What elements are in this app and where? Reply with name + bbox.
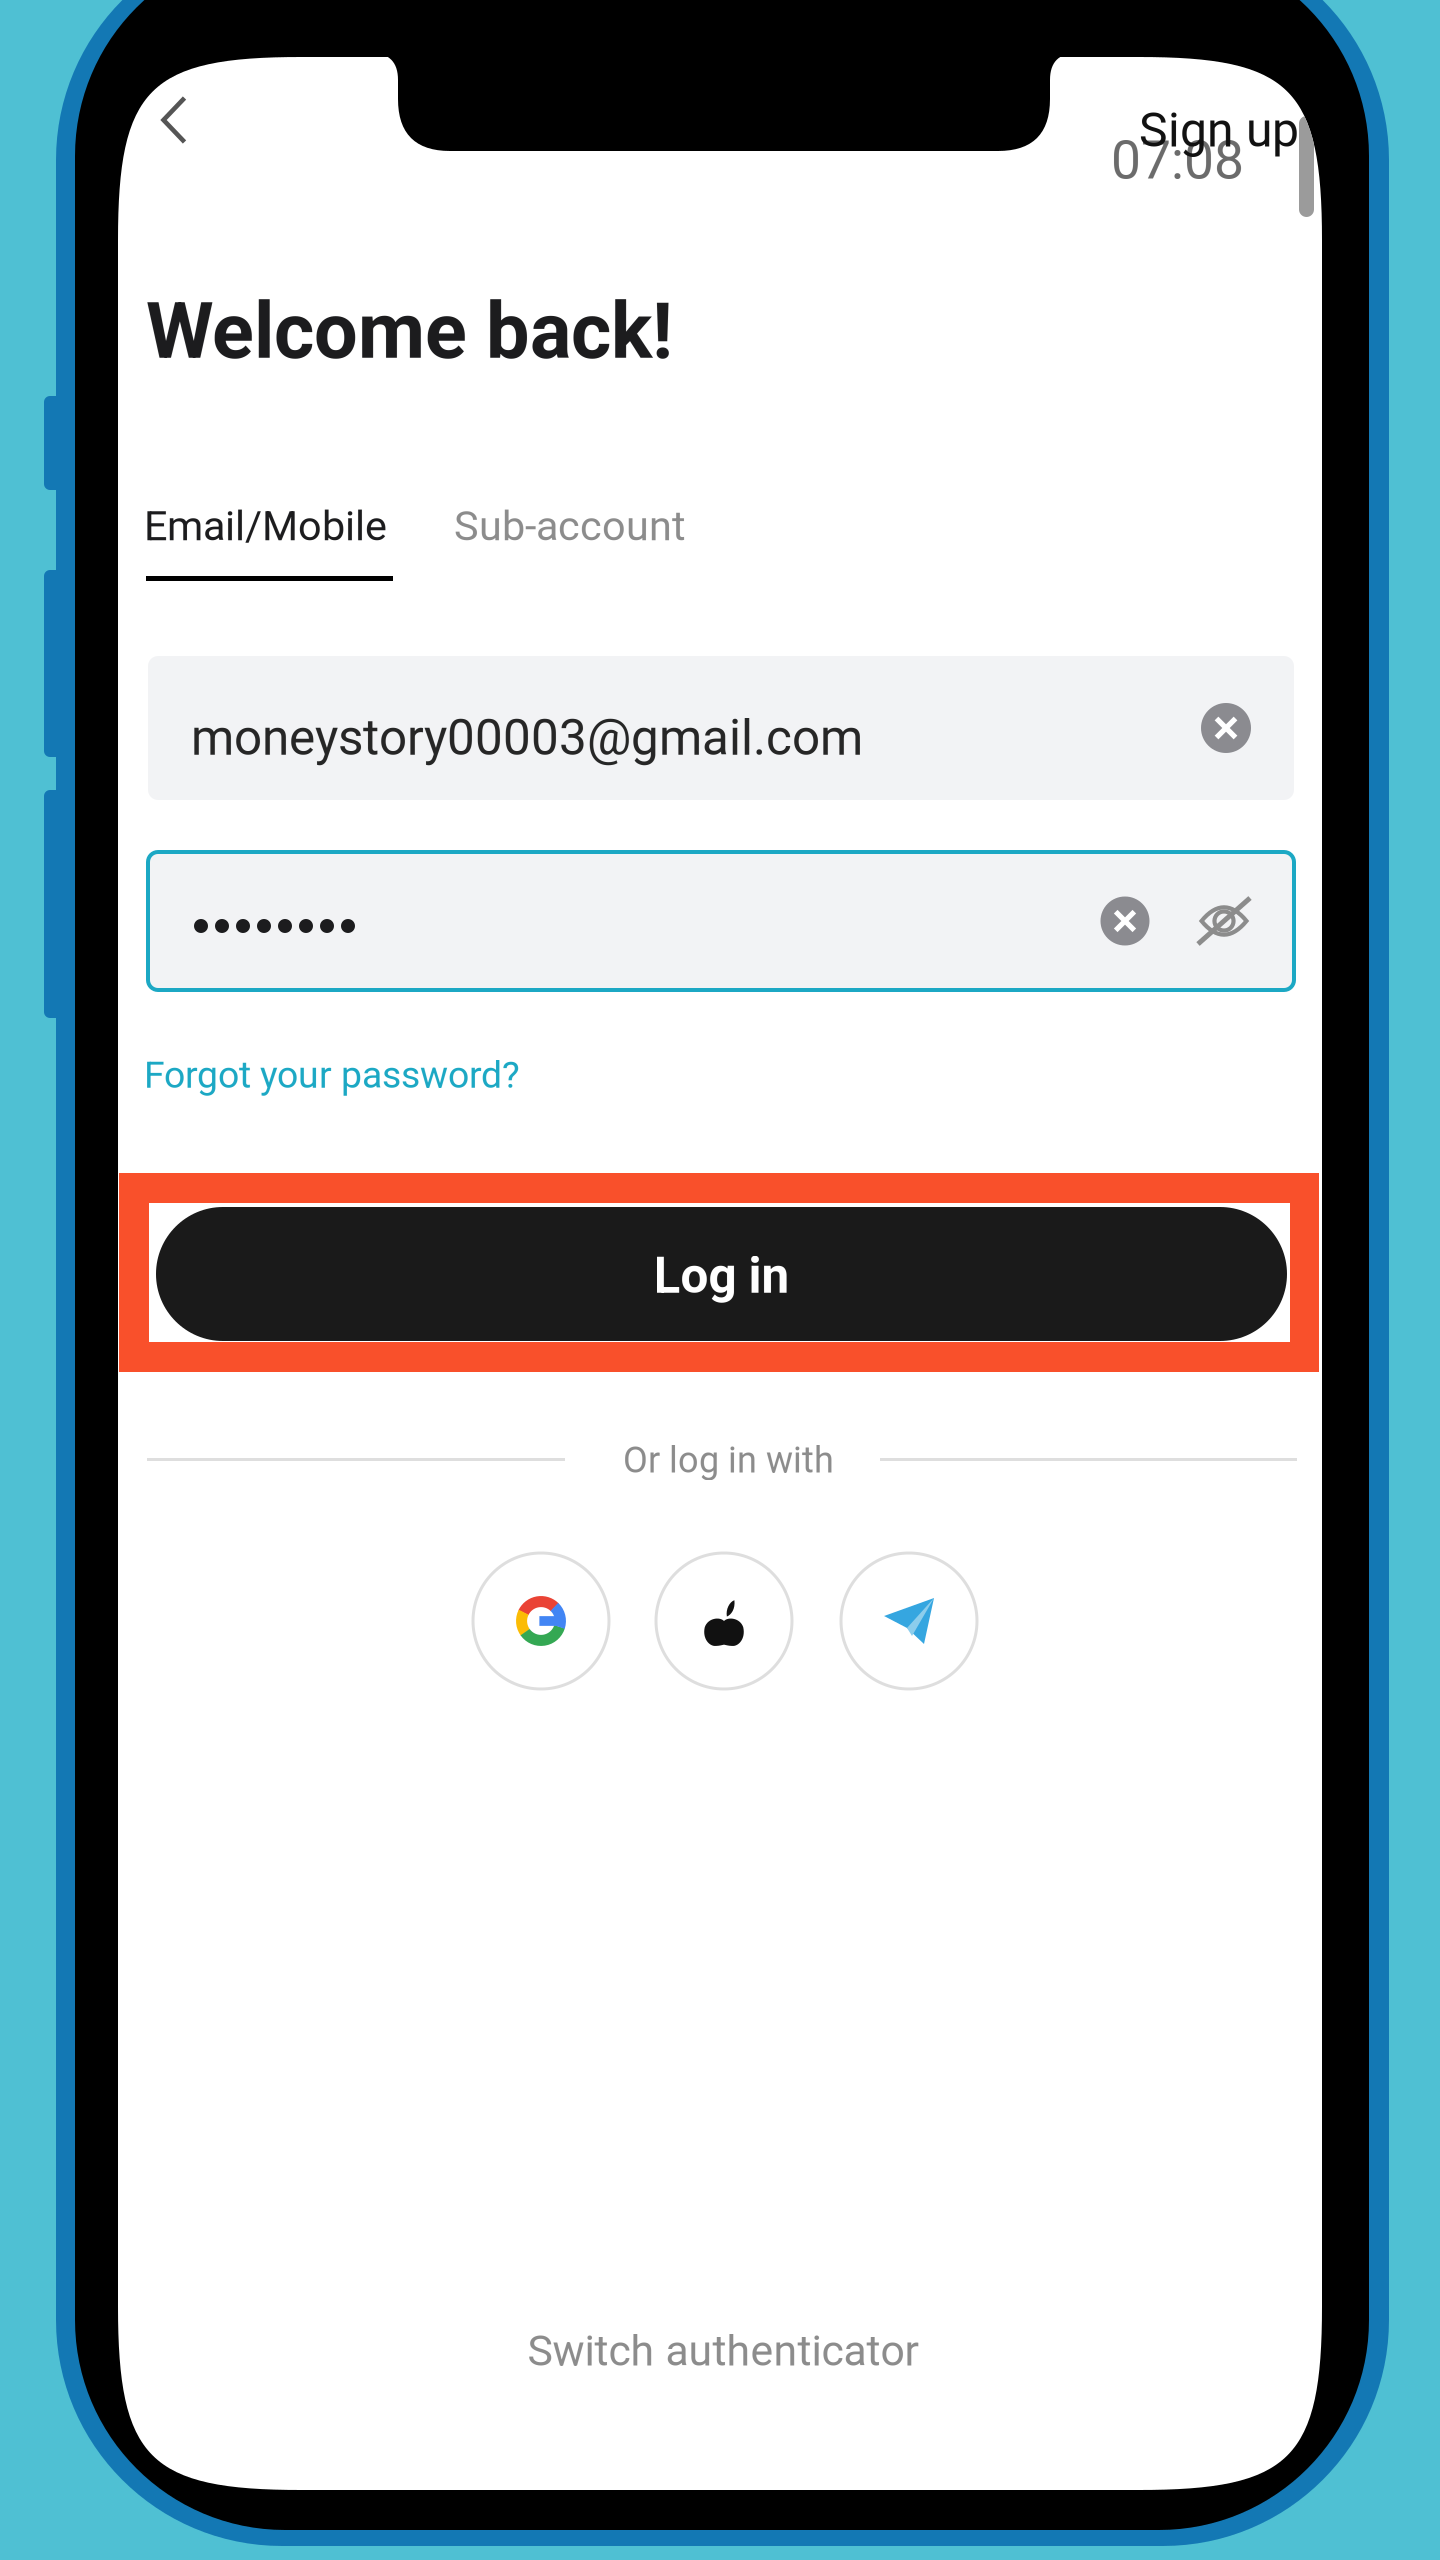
staticText: Welcome back! bbox=[146, 286, 673, 377]
button[interactable]: Forgot your password? bbox=[144, 1053, 524, 1117]
button[interactable]: Email/Mobile bbox=[144, 502, 391, 572]
staticText: Forgot your password? bbox=[144, 1053, 520, 1097]
staticText: Sign up bbox=[1139, 102, 1299, 158]
staticText: 07:08 bbox=[1111, 129, 1244, 191]
button[interactable]: Sign up bbox=[1059, 102, 1299, 194]
staticText: Switch authenticator bbox=[527, 2326, 918, 2376]
button[interactable]: Clear email bbox=[1171, 656, 1281, 800]
staticText: Or log in with bbox=[623, 1439, 834, 1481]
button[interactable]: Sign in with Telegram bbox=[841, 1553, 977, 1689]
staticText: Sub-account bbox=[454, 502, 686, 550]
button[interactable]: Sign in with Apple bbox=[656, 1553, 792, 1689]
button[interactable]: Show password bbox=[1169, 852, 1279, 990]
button[interactable]: Clear password bbox=[1070, 852, 1180, 990]
button[interactable]: Sign in with Google bbox=[473, 1553, 609, 1689]
button[interactable]: Log in bbox=[156, 1207, 1287, 1341]
staticText: moneystory00003@gmail.com bbox=[191, 709, 863, 767]
staticText: Email/Mobile bbox=[144, 502, 387, 550]
button[interactable]: Sub-account bbox=[454, 502, 714, 572]
staticText: Log in bbox=[653, 1247, 789, 1305]
button[interactable]: Back bbox=[126, 72, 222, 168]
button[interactable]: Switch authenticator bbox=[121, 2326, 1325, 2396]
